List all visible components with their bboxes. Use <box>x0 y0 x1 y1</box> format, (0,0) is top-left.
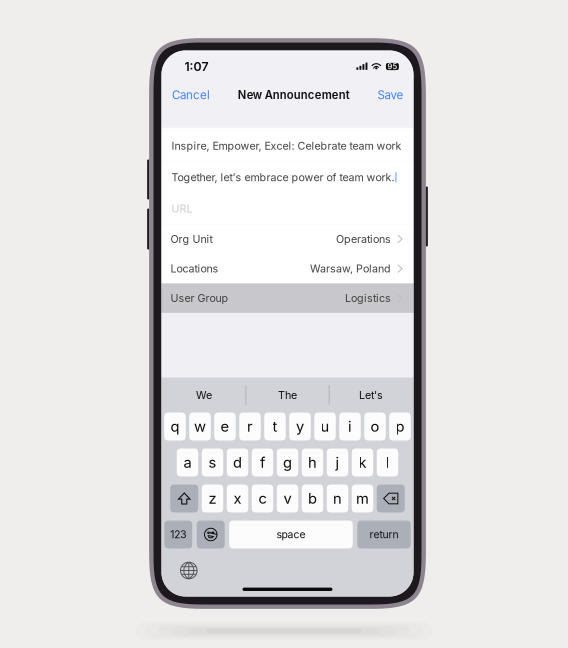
staticText: 95 <box>387 62 397 71</box>
staticText: e <box>220 418 229 435</box>
button[interactable]: n <box>327 484 348 512</box>
button[interactable]: c <box>252 484 273 512</box>
staticText: d <box>233 454 242 471</box>
staticText: i <box>348 418 352 435</box>
button[interactable]: h <box>302 448 323 476</box>
staticText: u <box>320 418 329 435</box>
staticText: a <box>183 454 191 471</box>
button[interactable]: v <box>277 484 298 512</box>
button[interactable]: i <box>339 412 361 440</box>
staticText: f <box>260 454 265 471</box>
button[interactable]: o <box>364 412 386 440</box>
staticText: v <box>283 490 291 507</box>
button[interactable]: Cancel <box>161 82 218 107</box>
button[interactable]: x <box>227 484 248 512</box>
button[interactable]: u <box>314 412 336 440</box>
button[interactable]: w <box>189 412 211 440</box>
button[interactable]: s <box>202 448 223 476</box>
button[interactable]: return <box>357 520 411 548</box>
button[interactable]: User Group <box>161 283 413 313</box>
button[interactable]: d <box>227 448 248 476</box>
staticText: Cancel <box>172 88 210 102</box>
staticText: h <box>308 454 317 471</box>
staticText: z <box>208 490 216 507</box>
button[interactable]: y <box>289 412 311 440</box>
button[interactable]: a <box>177 448 198 476</box>
button[interactable]: Shift <box>170 484 198 512</box>
staticText: The <box>278 388 297 401</box>
button[interactable]: r <box>239 412 261 440</box>
staticText: User Group <box>170 292 228 305</box>
staticText: Org Unit <box>170 232 212 245</box>
staticText: 123 <box>170 528 186 541</box>
button[interactable]: Delete <box>377 484 405 512</box>
button[interactable]: t <box>264 412 286 440</box>
button[interactable]: space <box>229 520 353 548</box>
staticText: We <box>196 388 212 401</box>
staticText: g <box>283 454 292 471</box>
button[interactable]: e <box>214 412 236 440</box>
button[interactable]: 123 <box>164 520 192 548</box>
button[interactable]: Locations <box>161 254 413 283</box>
button[interactable]: q <box>164 412 186 440</box>
staticText: w <box>194 418 206 435</box>
staticText: q <box>170 418 179 435</box>
staticText: x <box>233 490 241 507</box>
button[interactable]: URL <box>161 193 413 224</box>
button[interactable]: k <box>352 448 373 476</box>
button[interactable]: Switch keyboard <box>176 557 202 583</box>
staticText: y <box>296 418 304 435</box>
button[interactable]: Save <box>369 82 413 107</box>
button[interactable]: Org Unit <box>161 224 413 254</box>
button[interactable]: m <box>352 484 373 512</box>
staticText: r <box>247 418 253 435</box>
staticText: Operations <box>336 232 391 245</box>
staticText: space <box>276 528 305 541</box>
button[interactable]: b <box>302 484 323 512</box>
staticText: return <box>369 528 398 541</box>
staticText: Warsaw, Poland <box>310 262 391 275</box>
staticText: s <box>208 454 216 471</box>
staticText: m <box>356 490 369 507</box>
staticText: n <box>333 490 342 507</box>
staticText: New Announcement <box>238 88 350 102</box>
button[interactable]: The <box>246 377 329 412</box>
staticText: k <box>358 454 366 471</box>
staticText: Together, let's embrace power of team wo… <box>171 171 394 184</box>
staticText: l <box>385 454 389 471</box>
button[interactable]: p <box>389 412 411 440</box>
button[interactable]: Let's <box>329 377 412 412</box>
staticText: Let's <box>359 388 383 401</box>
button[interactable]: Emoji <box>197 520 225 548</box>
button[interactable]: f <box>252 448 273 476</box>
staticText: Logistics <box>345 292 391 305</box>
staticText: p <box>395 418 404 435</box>
button[interactable]: l <box>377 448 398 476</box>
staticText: URL <box>171 202 192 215</box>
button[interactable]: Together, let's embrace power of team wo… <box>161 162 413 193</box>
button[interactable]: g <box>277 448 298 476</box>
staticText: Save <box>377 88 403 102</box>
staticText: Locations <box>170 262 218 275</box>
button[interactable]: Inspire, Empower, Excel: Celebrate team … <box>161 130 413 162</box>
button[interactable]: z <box>202 484 223 512</box>
button[interactable]: We <box>162 377 245 412</box>
staticText: t <box>272 418 277 435</box>
staticText: 1:07 <box>184 59 208 74</box>
staticText: c <box>258 490 266 507</box>
button[interactable]: j <box>327 448 348 476</box>
staticText: o <box>370 418 379 435</box>
staticText: j <box>335 454 339 471</box>
staticText: Inspire, Empower, Excel: Celebrate team … <box>171 139 401 152</box>
staticText: b <box>308 490 317 507</box>
